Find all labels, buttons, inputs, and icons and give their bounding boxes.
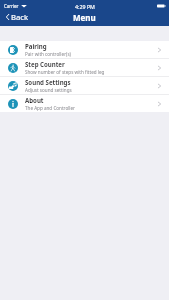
staticText: Pair with controller(s) (25, 51, 72, 57)
staticText: Sound Settings (25, 78, 71, 86)
button[interactable]: About (0, 95, 169, 112)
staticText: Adjust sound settings (25, 87, 72, 93)
button[interactable]: Step Counter (0, 59, 169, 76)
staticText: Menu (73, 12, 96, 23)
staticText: About (25, 96, 44, 104)
staticText: Pairing (25, 42, 47, 50)
button[interactable]: Sound Settings (0, 77, 169, 94)
staticText: Step Counter (25, 60, 65, 68)
staticText: Carrier (4, 3, 19, 9)
staticText: Back (11, 12, 29, 22)
staticText: Show number of steps with fitted leg (25, 69, 105, 75)
button[interactable]: Pairing (0, 41, 169, 58)
staticText: The App and Controller (25, 105, 76, 111)
button[interactable]: Back (0, 10, 36, 24)
staticText: 4:29 PM (75, 3, 95, 10)
